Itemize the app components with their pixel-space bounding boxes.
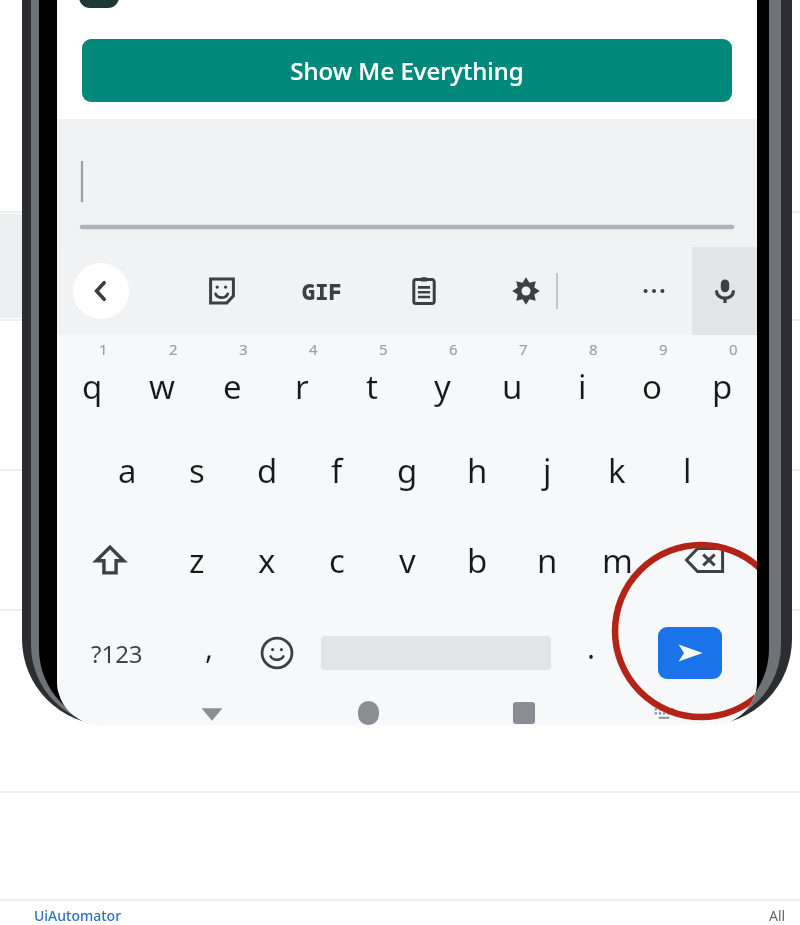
staticText: . [587, 627, 596, 668]
button[interactable]: Keyboard tool [193, 247, 251, 335]
staticText: 3 [239, 339, 248, 359]
staticText: i [578, 364, 587, 409]
staticText: t [366, 364, 378, 409]
button[interactable]: 6 [407, 335, 477, 425]
button[interactable]: b [442, 515, 512, 605]
staticText: 5 [379, 339, 388, 359]
button[interactable]: n [512, 515, 582, 605]
button[interactable]: Home [290, 701, 446, 725]
button[interactable]: l [652, 425, 722, 515]
button[interactable]: 0 [687, 335, 757, 425]
button[interactable]: c [302, 515, 372, 605]
staticText: 4 [309, 339, 318, 359]
button[interactable]: j [512, 425, 582, 515]
staticText: b [467, 538, 488, 583]
staticText: s [189, 448, 205, 493]
staticText: n [537, 538, 558, 583]
button[interactable]: . [559, 605, 623, 701]
button[interactable]: 5 [337, 335, 407, 425]
staticText: f [331, 448, 343, 493]
staticText: z [189, 538, 205, 583]
button[interactable]: Backspace [652, 515, 757, 605]
button[interactable]: z [162, 515, 232, 605]
staticText: g [397, 448, 418, 493]
staticText: 2 [169, 339, 178, 359]
button[interactable]: , [177, 605, 241, 701]
button[interactable]: 9 [617, 335, 687, 425]
staticText: v [399, 538, 416, 583]
button[interactable]: h [442, 425, 512, 515]
button[interactable]: 1 [57, 335, 127, 425]
staticText: d [257, 448, 278, 493]
staticText: p [712, 364, 733, 409]
button[interactable]: 3 [197, 335, 267, 425]
staticText: 7 [519, 339, 528, 359]
staticText: y [434, 364, 451, 409]
button[interactable]: Voice input [692, 247, 757, 335]
staticText: All [769, 906, 786, 925]
button[interactable]: f [302, 425, 372, 515]
button[interactable] [312, 605, 559, 701]
staticText: UiAutomator [34, 906, 122, 925]
staticText: k [608, 448, 626, 493]
staticText: 0 [729, 339, 738, 359]
button[interactable]: 8 [547, 335, 617, 425]
button[interactable]: Switch keyboard [602, 701, 726, 725]
button[interactable]: 4 [267, 335, 337, 425]
staticText: GIF [302, 276, 342, 306]
button[interactable]: s [162, 425, 232, 515]
button[interactable]: v [372, 515, 442, 605]
staticText: w [149, 364, 175, 409]
button[interactable]: k [582, 425, 652, 515]
button[interactable]: Show Me Everything [82, 39, 732, 102]
staticText: , [205, 627, 214, 668]
button[interactable]: Keyboard tool [293, 247, 351, 335]
button[interactable]: a [92, 425, 162, 515]
staticText: l [683, 448, 692, 493]
staticText: ?123 [91, 637, 143, 670]
staticText: x [258, 538, 276, 583]
button[interactable]: Keyboard tool [395, 247, 453, 335]
button[interactable]: 2 [127, 335, 197, 425]
staticText: 1 [99, 339, 108, 359]
staticText: j [543, 448, 552, 493]
button[interactable]: Emoji [241, 605, 312, 701]
staticText: c [329, 538, 345, 583]
staticText: q [82, 364, 103, 409]
button[interactable]: g [372, 425, 442, 515]
staticText: 8 [589, 339, 598, 359]
button[interactable]: Shift [57, 515, 162, 605]
button[interactable]: Recents [446, 701, 602, 725]
button[interactable]: 7 [477, 335, 547, 425]
button[interactable]: ?123 [57, 605, 177, 701]
button[interactable]: Back [73, 263, 129, 319]
staticText: u [502, 364, 523, 409]
button[interactable]: Keyboard tool [625, 247, 683, 335]
staticText: 6 [449, 339, 458, 359]
button[interactable]: Keyboard tool [497, 247, 555, 335]
button[interactable]: Send [623, 605, 757, 701]
button[interactable]: d [232, 425, 302, 515]
staticText: h [467, 448, 488, 493]
staticText: a [118, 448, 137, 493]
staticText: 9 [659, 339, 668, 359]
button[interactable]: m [582, 515, 652, 605]
staticText: m [602, 538, 633, 583]
staticText: Show Me Everything [290, 54, 524, 87]
button[interactable]: x [232, 515, 302, 605]
staticText: o [642, 364, 662, 409]
staticText: r [295, 364, 309, 409]
staticText: e [223, 364, 242, 409]
button[interactable]: Back [134, 701, 290, 725]
